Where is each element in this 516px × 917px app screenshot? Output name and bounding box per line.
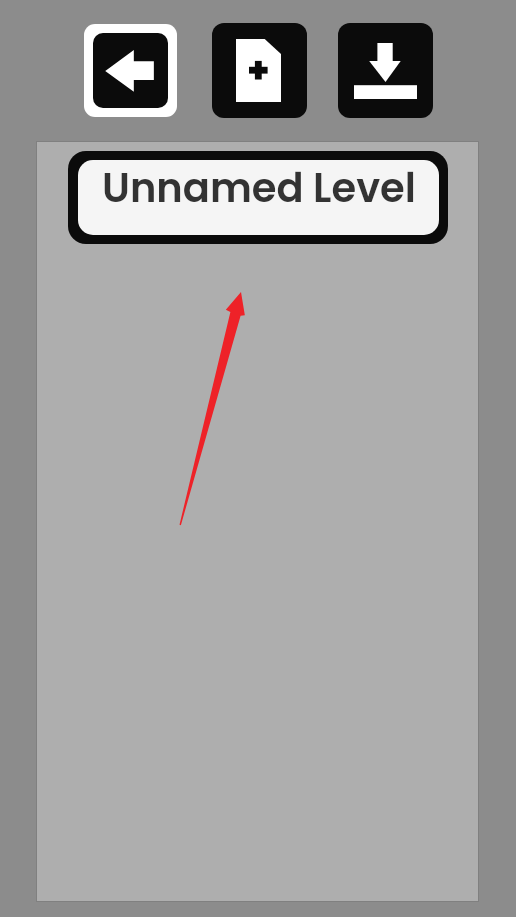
staticText: Unnamed Level [102, 160, 416, 216]
button[interactable]: Unnamed Level [68, 151, 448, 244]
button[interactable]: Back [84, 24, 177, 117]
button[interactable]: Save level [338, 23, 433, 118]
button[interactable]: New level [212, 23, 307, 118]
